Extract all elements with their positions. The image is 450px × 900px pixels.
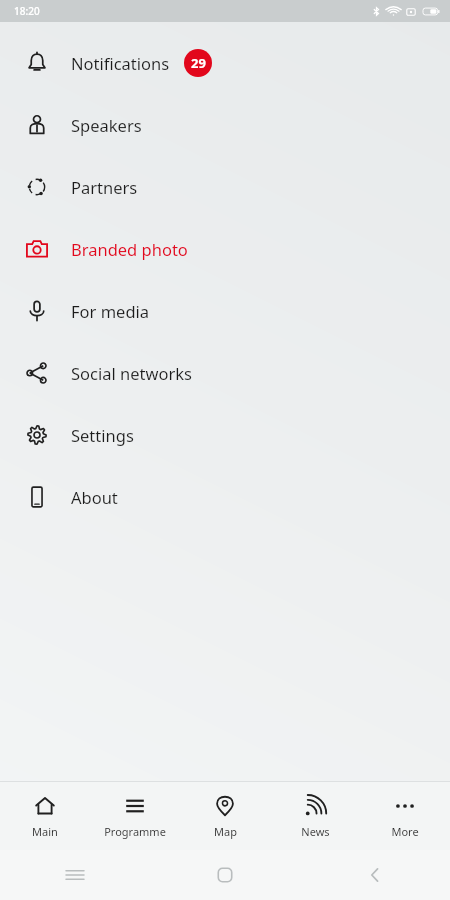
button[interactable]: Home bbox=[150, 867, 300, 883]
staticText: Branded photo bbox=[71, 238, 188, 260]
staticText: About bbox=[71, 486, 118, 508]
button[interactable]: Partners bbox=[0, 156, 450, 218]
button[interactable]: News bbox=[270, 786, 360, 847]
staticText: More bbox=[391, 824, 419, 839]
button[interactable]: Programme bbox=[90, 786, 180, 847]
staticText: Social networks bbox=[71, 362, 192, 384]
staticText: Partners bbox=[71, 176, 138, 198]
staticText: 29 bbox=[191, 54, 206, 72]
staticText: Speakers bbox=[71, 114, 142, 136]
button[interactable]: For media bbox=[0, 280, 450, 342]
staticText: Map bbox=[214, 824, 237, 839]
staticText: Programme bbox=[104, 824, 166, 839]
button[interactable]: Speakers bbox=[0, 94, 450, 156]
staticText: News bbox=[301, 824, 330, 839]
button[interactable]: Branded photo bbox=[0, 218, 450, 280]
button[interactable]: Map bbox=[180, 786, 270, 847]
staticText: Notifications bbox=[71, 52, 170, 74]
staticText: 18:20 bbox=[14, 4, 40, 18]
button[interactable]: Recents bbox=[0, 866, 150, 884]
button[interactable]: Main bbox=[0, 786, 90, 847]
staticText: Main bbox=[32, 824, 58, 839]
staticText: For media bbox=[71, 300, 150, 322]
button[interactable]: Social networks bbox=[0, 342, 450, 404]
button[interactable]: More bbox=[360, 786, 450, 847]
button[interactable]: Settings bbox=[0, 404, 450, 466]
button[interactable]: Notifications bbox=[0, 32, 450, 94]
button[interactable]: About bbox=[0, 466, 450, 528]
staticText: Settings bbox=[71, 424, 134, 446]
button[interactable]: Back bbox=[300, 867, 450, 883]
